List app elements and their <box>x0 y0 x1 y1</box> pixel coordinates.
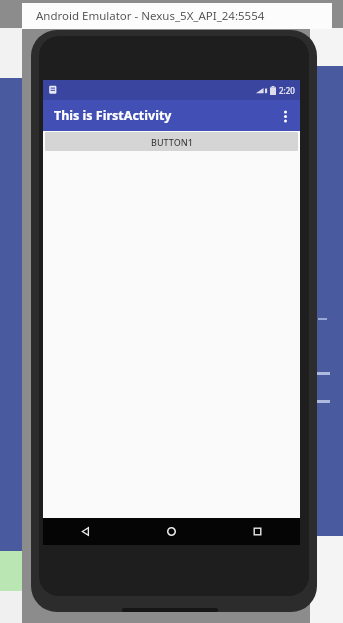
button[interactable]: Recent apps <box>214 518 300 545</box>
button[interactable]: More options <box>270 101 300 131</box>
staticText: Android Emulator - Nexus_5X_API_24:5554 <box>36 8 265 24</box>
staticText: 2:20 <box>279 85 295 96</box>
staticText: This is FirstActivity <box>54 107 172 124</box>
button[interactable]: Back <box>43 518 128 545</box>
button[interactable]: BUTTON1 <box>45 132 298 151</box>
staticText: BUTTON1 <box>151 136 193 148</box>
button[interactable]: Home <box>128 518 214 545</box>
